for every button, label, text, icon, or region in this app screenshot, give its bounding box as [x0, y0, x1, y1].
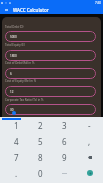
staticText: 12 [10, 90, 14, 94]
button[interactable]: 1 [4, 117, 28, 133]
staticText: 1800 [10, 54, 17, 58]
staticText: 6 [62, 136, 67, 147]
staticText: Corporate Tax Ratio (Tc) in % [5, 98, 44, 102]
button[interactable]: 12 [5, 86, 96, 97]
staticText: WACC Calculator [13, 7, 49, 13]
staticText: 3 [62, 120, 67, 131]
staticText: 1 [14, 120, 19, 131]
staticText: 7 [14, 152, 19, 163]
staticText: 5 [38, 136, 43, 147]
staticText: Cost of Debt (Rd) in % [5, 61, 35, 65]
button[interactable]: 30 [5, 104, 96, 115]
button[interactable]: 3 [52, 117, 77, 133]
button[interactable]: , [77, 133, 102, 149]
button[interactable]: - [77, 117, 102, 133]
button[interactable]: 6 [52, 133, 77, 149]
button[interactable]: 5000 [5, 31, 96, 42]
staticText: - [88, 120, 91, 131]
staticText: 6 [10, 72, 12, 76]
staticText: 7:30 [95, 1, 102, 5]
staticText: . [15, 168, 18, 179]
staticText: , [88, 136, 91, 147]
staticText: 2 [38, 120, 43, 131]
button[interactable]: 9 [52, 149, 77, 165]
staticText: 4 [14, 136, 19, 147]
staticText: 0 [38, 168, 43, 179]
button[interactable]: 5 [28, 133, 52, 149]
button[interactable]: 2 [28, 117, 52, 133]
button[interactable]: Backspace [77, 149, 102, 165]
staticText: 5000 [10, 35, 17, 39]
staticText: 30 [10, 108, 14, 112]
staticText: Total Debt (D) [5, 25, 24, 29]
button[interactable]: Enter [77, 165, 102, 181]
button[interactable]: Space [52, 165, 77, 181]
button[interactable]: 0 [28, 165, 52, 181]
button[interactable]: Open navigation menu [0, 5, 13, 14]
button[interactable]: 4 [4, 133, 28, 149]
staticText: 9 [62, 152, 67, 163]
button[interactable]: 7 [4, 149, 28, 165]
button[interactable]: 1800 [5, 50, 96, 61]
staticText: Total Equity (E) [5, 43, 25, 47]
staticText: 8 [38, 152, 43, 163]
button[interactable]: . [4, 165, 28, 181]
button[interactable]: 6 [5, 68, 96, 79]
staticText: Cost of Equity (Re) in % [5, 79, 37, 83]
button[interactable]: 8 [28, 149, 52, 165]
